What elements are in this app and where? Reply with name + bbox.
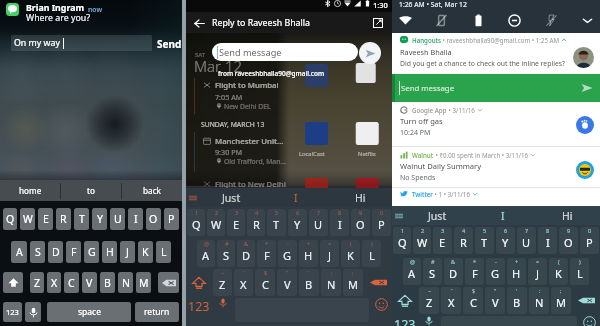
button[interactable]: A (11, 241, 27, 263)
button[interactable]: Battery (469, 11, 487, 29)
button[interactable]: ( (341, 240, 360, 267)
button[interactable]: 5 (267, 209, 286, 236)
button[interactable]: Walnut (392, 147, 600, 187)
button[interactable]: space (47, 302, 131, 322)
button[interactable]: & (237, 240, 255, 267)
button[interactable]: Hi (535, 206, 600, 225)
button[interactable]: ~ (419, 287, 439, 314)
button[interactable]: Send message (212, 43, 358, 61)
button[interactable]: = (528, 258, 547, 285)
button[interactable]: ` (441, 287, 461, 314)
button[interactable]: Y (92, 208, 107, 230)
button[interactable]: Twitter (392, 190, 600, 198)
button[interactable]: 4 (454, 227, 473, 254)
button[interactable]: return (135, 302, 179, 322)
button[interactable]: : (321, 269, 341, 296)
button[interactable]: Auto-rotate (432, 11, 450, 29)
button[interactable]: T (74, 208, 89, 230)
button[interactable]: Wi-Fi (396, 11, 414, 29)
button[interactable]: Back (192, 16, 206, 30)
button[interactable]: ; (343, 269, 363, 296)
button[interactable]: ( (549, 258, 568, 285)
button[interactable]: D (48, 241, 63, 263)
button[interactable]: Send (359, 42, 381, 64)
button[interactable]: ) (570, 258, 589, 285)
button[interactable] (158, 272, 179, 293)
button[interactable]: 3 (227, 209, 245, 236)
button[interactable]: Just (405, 206, 470, 225)
button[interactable]: Hangouts (392, 33, 600, 68)
button[interactable] (25, 302, 41, 322)
button[interactable]: Z (30, 272, 44, 293)
button[interactable]: " (485, 287, 505, 314)
button[interactable]: * (257, 240, 276, 267)
button[interactable]: home (0, 180, 60, 201)
button[interactable] (3, 272, 23, 293)
button[interactable]: - (486, 258, 505, 285)
button[interactable]: - (278, 240, 297, 267)
button[interactable]: Hi (328, 188, 392, 207)
button[interactable]: Backspace (364, 269, 392, 296)
button[interactable]: Q (3, 208, 17, 230)
button[interactable]: W (20, 208, 35, 230)
button[interactable]: Google App (392, 102, 600, 146)
button[interactable]: Expand (578, 11, 596, 29)
button[interactable]: 7 (309, 209, 328, 236)
button[interactable]: L (156, 241, 171, 263)
button[interactable]: Voice input (212, 298, 234, 322)
button[interactable]: J (120, 241, 135, 263)
button[interactable]: $ (255, 269, 275, 296)
button[interactable]: 123 (392, 316, 418, 326)
button[interactable]: ; (551, 287, 571, 314)
button[interactable]: 0 (372, 209, 391, 236)
button[interactable]: 0 (580, 227, 599, 254)
button[interactable]: Emoji (370, 298, 392, 322)
button[interactable]: I (470, 206, 535, 225)
button[interactable]: # (217, 240, 235, 267)
button[interactable]: Backspace (572, 287, 600, 314)
button[interactable]: ` (234, 269, 253, 296)
button[interactable]: Shift (186, 269, 212, 296)
button[interactable]: On my way (11, 35, 152, 51)
button[interactable]: @ (403, 258, 421, 285)
button[interactable]: U (110, 208, 125, 230)
button[interactable]: E (38, 208, 53, 230)
button[interactable]: 7 (517, 227, 536, 254)
button[interactable]: 4 (247, 209, 265, 236)
button[interactable]: H (102, 241, 117, 263)
button[interactable]: to (61, 180, 121, 201)
button[interactable]: 123 (186, 298, 212, 322)
button[interactable]: Voice input (418, 316, 440, 326)
button[interactable]: + (507, 258, 526, 285)
button[interactable]: 8 (538, 227, 557, 254)
button[interactable]: 2 (413, 227, 431, 254)
button[interactable]: & (444, 258, 463, 285)
button[interactable]: $ (463, 287, 483, 314)
button[interactable]: Keyboard options (186, 188, 199, 207)
button[interactable]: F (66, 241, 81, 263)
button[interactable]: Flashlight (542, 11, 560, 29)
button[interactable]: 6 (496, 227, 515, 254)
button[interactable]: back (122, 180, 182, 201)
button[interactable]: # (423, 258, 442, 285)
button[interactable]: ' (507, 287, 527, 314)
button[interactable]: ' (299, 269, 319, 296)
button[interactable]: Just (199, 188, 264, 207)
button[interactable]: 2 (207, 209, 225, 236)
button[interactable]: B (100, 272, 115, 293)
button[interactable]: P (164, 208, 179, 230)
button[interactable]: = (320, 240, 339, 267)
button[interactable]: C (64, 272, 79, 293)
button[interactable]: Emoji (578, 316, 600, 326)
button[interactable]: X (47, 272, 61, 293)
button[interactable]: K (138, 241, 153, 263)
button[interactable]: @ (197, 240, 215, 267)
button[interactable]: 1 (393, 227, 411, 254)
button[interactable]: I (264, 188, 328, 207)
button[interactable]: 9 (351, 209, 370, 236)
button[interactable]: Send message (392, 74, 600, 102)
button[interactable]: * (465, 258, 484, 285)
button[interactable]: 9 (559, 227, 578, 254)
button[interactable]: ~ (213, 269, 232, 296)
